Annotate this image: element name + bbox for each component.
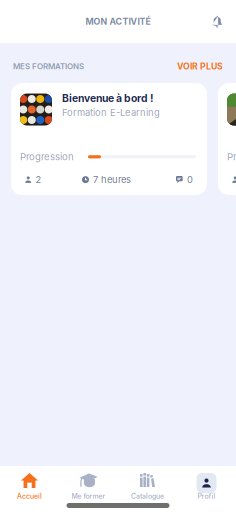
- staticText: Progression: [20, 151, 74, 163]
- button[interactable]: Accueil: [0, 466, 59, 503]
- button[interactable]: Catalogue: [118, 466, 177, 503]
- button[interactable]: Bienvenue à bord !: [11, 83, 207, 195]
- staticText: MES FORMATIONS: [13, 61, 84, 71]
- staticText: MON ACTIVITÉ: [85, 16, 150, 27]
- staticText: Profil: [197, 492, 215, 500]
- button[interactable]: Me former: [59, 466, 118, 503]
- staticText: Formation E-Learning: [62, 107, 160, 118]
- staticText: Progression: [227, 151, 236, 163]
- button[interactable]: Profil: [177, 466, 236, 503]
- button[interactable]: Notifications: [211, 15, 236, 28]
- button[interactable]: VOIR PLUS: [177, 61, 223, 71]
- staticText: 7 heures: [93, 174, 131, 185]
- button[interactable]: Prévention routière: [218, 83, 236, 195]
- staticText: VOIR PLUS: [177, 61, 223, 71]
- staticText: Catalogue: [131, 492, 164, 500]
- staticText: Accueil: [17, 492, 42, 500]
- staticText: Me former: [71, 492, 105, 500]
- staticText: Bienvenue à bord !: [62, 92, 154, 105]
- staticText: 2: [35, 174, 41, 185]
- staticText: 0: [187, 174, 193, 185]
